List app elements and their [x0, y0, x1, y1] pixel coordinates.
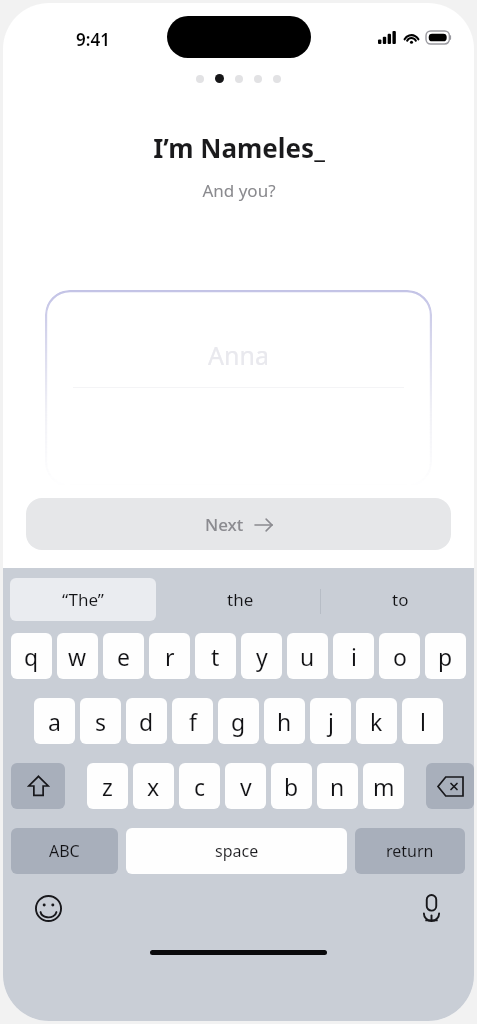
staticText: x	[147, 771, 160, 802]
button[interactable]: e	[103, 633, 144, 679]
staticText: l	[420, 706, 426, 737]
button[interactable]: return	[355, 828, 465, 874]
button[interactable]: Anna	[45, 290, 432, 487]
staticText: o	[393, 641, 407, 672]
button[interactable]: k	[356, 698, 397, 744]
button[interactable]: n	[317, 763, 358, 809]
staticText: space	[215, 840, 259, 862]
staticText: c	[194, 771, 206, 802]
button[interactable]: s	[80, 698, 121, 744]
button[interactable]: z	[87, 763, 128, 809]
staticText: n	[330, 771, 345, 802]
staticText: the	[227, 588, 254, 611]
staticText: ABC	[49, 840, 80, 862]
button[interactable]: r	[149, 633, 190, 679]
button[interactable]: Next	[26, 498, 451, 550]
staticText: to	[392, 588, 409, 611]
button[interactable]: f	[172, 698, 213, 744]
button[interactable]: x	[133, 763, 174, 809]
button[interactable]: space	[126, 828, 347, 874]
staticText: u	[300, 641, 315, 672]
button[interactable]: g	[218, 698, 259, 744]
button[interactable]: v	[225, 763, 266, 809]
button[interactable]: Emoji	[33, 893, 63, 923]
staticText: I’m Nameles_	[153, 130, 325, 165]
button[interactable]: ABC	[11, 828, 118, 874]
staticText: q	[24, 641, 39, 672]
button[interactable]: to	[339, 578, 461, 621]
button[interactable]: q	[11, 633, 52, 679]
button[interactable]: j	[310, 698, 351, 744]
staticText: b	[284, 771, 299, 802]
staticText: k	[370, 706, 383, 737]
staticText: e	[117, 641, 130, 672]
button[interactable]: Backspace	[426, 763, 474, 809]
staticText: i	[351, 641, 357, 672]
button[interactable]: c	[179, 763, 220, 809]
staticText: v	[240, 771, 252, 802]
staticText: f	[189, 706, 197, 737]
button[interactable]: t	[195, 633, 236, 679]
staticText: t	[211, 641, 220, 672]
staticText: And you?	[202, 179, 276, 202]
staticText: “The”	[62, 588, 104, 611]
button[interactable]: w	[57, 633, 98, 679]
staticText: z	[102, 771, 113, 802]
button[interactable]: “The”	[10, 578, 156, 621]
button[interactable]: Shift	[11, 763, 65, 809]
button[interactable]: the	[179, 578, 301, 621]
button[interactable]: h	[264, 698, 305, 744]
staticText: h	[277, 706, 292, 737]
button[interactable]: Dictation	[416, 893, 446, 923]
button[interactable]: a	[34, 698, 75, 744]
button[interactable]: p	[425, 633, 466, 679]
staticText: d	[139, 706, 154, 737]
staticText: m	[373, 771, 395, 802]
button[interactable]: y	[241, 633, 282, 679]
staticText: p	[438, 641, 453, 672]
button[interactable]: b	[271, 763, 312, 809]
button[interactable]: l	[402, 698, 443, 744]
staticText: return	[386, 840, 434, 862]
staticText: w	[68, 641, 87, 672]
staticText: a	[48, 706, 61, 737]
staticText: y	[256, 641, 268, 672]
button[interactable]: u	[287, 633, 328, 679]
staticText: r	[165, 641, 175, 672]
staticText: 9:41	[76, 28, 110, 51]
button[interactable]: m	[363, 763, 404, 809]
button[interactable]: i	[333, 633, 374, 679]
staticText: Next	[205, 513, 244, 536]
staticText: s	[95, 706, 107, 737]
staticText: j	[328, 706, 334, 737]
button[interactable]: d	[126, 698, 167, 744]
button[interactable]: o	[379, 633, 420, 679]
staticText: Anna	[208, 338, 269, 372]
staticText: g	[231, 706, 246, 737]
